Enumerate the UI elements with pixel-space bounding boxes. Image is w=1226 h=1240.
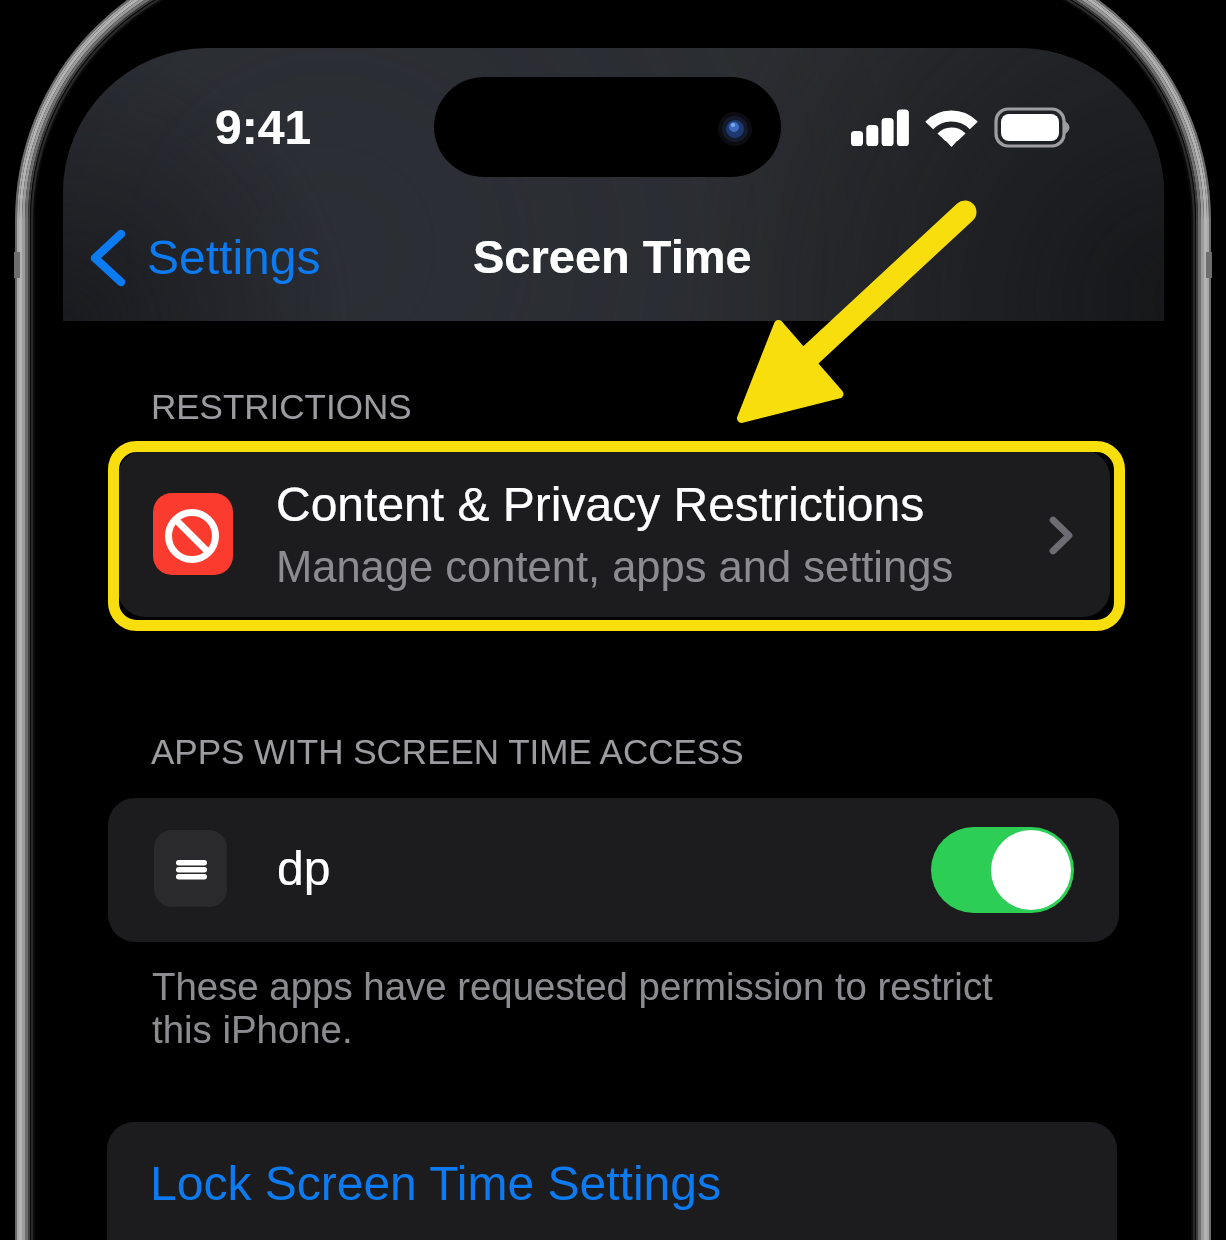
staticText: Manage content, apps and settings: [276, 543, 954, 592]
button[interactable]: Toggle Screen Time access for dp: [931, 827, 1074, 913]
staticText: 9:41: [215, 101, 312, 155]
staticText: These apps have requested permission to …: [152, 965, 993, 1051]
button[interactable]: dp: [108, 798, 1119, 942]
button[interactable]: Lock Screen Time Settings: [107, 1122, 1117, 1240]
staticText: Lock Screen Time Settings: [150, 1157, 721, 1211]
staticText: dp: [277, 842, 331, 896]
staticText: Screen Time: [473, 230, 752, 283]
button[interactable]: Settings: [76, 216, 321, 300]
staticText: APPS WITH SCREEN TIME ACCESS: [151, 732, 744, 771]
staticText: Content & Privacy Restrictions: [276, 478, 925, 532]
button[interactable]: Content & Privacy Restrictions: [118, 450, 1110, 617]
staticText: Settings: [147, 231, 321, 285]
staticText: RESTRICTIONS: [151, 387, 412, 426]
